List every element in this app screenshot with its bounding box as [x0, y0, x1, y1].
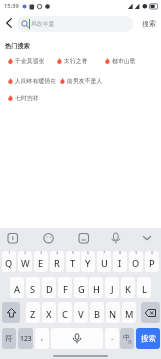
button[interactable]	[42, 231, 56, 245]
staticText: H	[93, 283, 100, 296]
staticText: 4	[56, 251, 59, 255]
button[interactable]: 千金莫嚣张	[8, 57, 45, 64]
staticText: K	[125, 283, 131, 296]
button[interactable]: 123	[18, 328, 33, 349]
staticText: 15:39	[4, 2, 19, 10]
button[interactable]: D	[42, 277, 56, 298]
button[interactable]: 太行之脊	[57, 57, 88, 64]
staticText: 1	[8, 251, 11, 255]
button[interactable]: O	[129, 251, 143, 272]
staticText: 英	[128, 339, 132, 344]
button[interactable]: 都市山歌	[105, 57, 136, 64]
staticText: .	[111, 331, 114, 342]
staticText: 前男友不是人	[67, 77, 103, 84]
staticText: 7	[103, 251, 106, 255]
button[interactable]: 搜索	[136, 328, 160, 349]
staticText: 123	[20, 334, 32, 343]
staticText: U	[101, 257, 108, 270]
staticText: D	[46, 283, 53, 296]
staticText: 3	[40, 251, 43, 255]
button[interactable]: 符	[2, 328, 16, 349]
button[interactable]: ,	[35, 328, 49, 349]
button[interactable]: 搜索	[138, 16, 159, 30]
staticText: 6	[87, 251, 90, 255]
button[interactable]: F	[58, 277, 72, 298]
staticText: A	[14, 283, 21, 296]
button[interactable]	[77, 231, 91, 245]
button[interactable]: I	[113, 251, 127, 272]
button[interactable]: C	[58, 302, 72, 323]
staticText: 热门搜索	[5, 42, 30, 50]
staticText: 符	[5, 334, 13, 343]
button[interactable]: 前男友不是人	[60, 77, 103, 84]
button[interactable]: A	[10, 277, 24, 298]
staticText: E	[38, 257, 44, 270]
button[interactable]: V	[74, 302, 88, 323]
button[interactable]: E	[34, 251, 48, 272]
staticText: F	[63, 283, 68, 296]
button[interactable]: J	[105, 277, 119, 298]
button[interactable]: S	[26, 277, 40, 298]
staticText: 2	[24, 251, 27, 255]
button[interactable]: U	[97, 251, 111, 272]
button[interactable]	[140, 231, 154, 245]
staticText: R	[54, 257, 60, 270]
button[interactable]: T	[66, 251, 80, 272]
staticText: V	[78, 308, 84, 321]
staticText: 9	[135, 251, 138, 255]
staticText: 搜索	[141, 334, 156, 343]
button[interactable]: G	[74, 277, 88, 298]
button[interactable]	[2, 16, 16, 30]
staticText: B	[94, 308, 101, 321]
staticText: W	[21, 257, 30, 270]
button[interactable]	[51, 328, 103, 349]
staticText: G	[78, 283, 85, 296]
button[interactable]: M	[122, 302, 136, 323]
button[interactable]: K	[121, 277, 135, 298]
button[interactable]: P	[145, 251, 159, 272]
staticText: X	[46, 308, 52, 321]
staticText: 中	[123, 333, 130, 342]
staticText: T	[70, 257, 76, 270]
staticText: L	[142, 283, 147, 296]
button[interactable]	[109, 231, 123, 245]
button[interactable]	[2, 302, 20, 323]
staticText: 太行之脊	[64, 57, 88, 64]
staticText: P	[149, 257, 155, 270]
staticText: 都市山歌	[112, 57, 136, 64]
button[interactable]: X	[42, 302, 56, 323]
button[interactable]	[6, 231, 20, 245]
button[interactable]: 中	[120, 328, 134, 349]
button[interactable]: L	[137, 277, 151, 298]
staticText: 8	[119, 251, 122, 255]
staticText: O	[132, 257, 140, 270]
staticText: ,	[41, 331, 44, 342]
button[interactable]: Y	[81, 251, 95, 272]
button[interactable]: R	[50, 251, 64, 272]
staticText: 七时吉祥	[15, 94, 39, 101]
button[interactable]: W	[18, 251, 32, 272]
staticText: 搜索	[142, 19, 156, 28]
button[interactable]: 风吹半夏	[17, 16, 133, 32]
staticText: M	[125, 308, 134, 321]
staticText: J	[111, 283, 114, 296]
staticText: Q	[5, 257, 13, 270]
staticText: 0	[151, 251, 154, 255]
staticText: Z	[30, 308, 36, 321]
button[interactable]: Q	[2, 251, 16, 272]
staticText: 5	[72, 251, 75, 255]
staticText: C	[62, 308, 68, 321]
button[interactable]: 人间终有暖情在	[8, 77, 57, 84]
staticText: 人间终有暖情在	[15, 77, 57, 84]
button[interactable]: B	[90, 302, 104, 323]
staticText: I	[118, 257, 122, 270]
button[interactable]: 七时吉祥	[8, 94, 39, 101]
staticText: Y	[85, 257, 91, 270]
button[interactable]	[141, 302, 160, 323]
button[interactable]: N	[106, 302, 120, 323]
staticText: 千金莫嚣张	[15, 57, 45, 64]
button[interactable]: Z	[26, 302, 40, 323]
button[interactable]: .	[105, 328, 119, 349]
button[interactable]: H	[89, 277, 103, 298]
staticText: S	[30, 283, 36, 296]
